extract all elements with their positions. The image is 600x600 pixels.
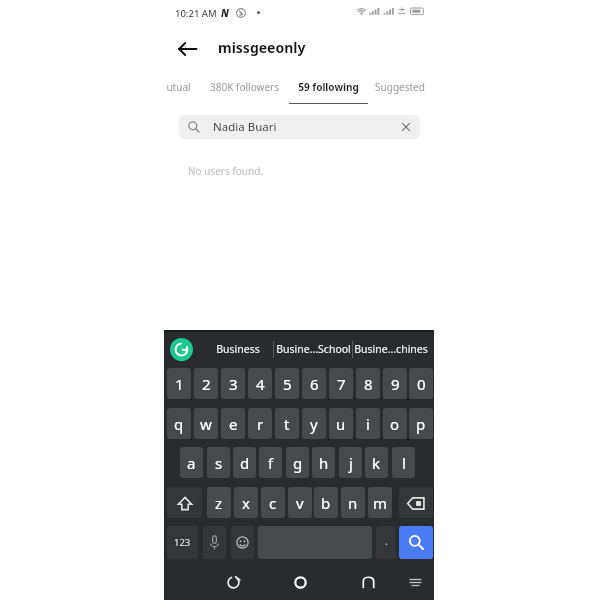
button[interactable]: v [288, 487, 312, 518]
staticText: 8 [364, 374, 373, 394]
staticText: h [319, 453, 329, 473]
button[interactable]: Backspace [399, 487, 433, 518]
button[interactable]: 59 following [289, 72, 368, 104]
button[interactable]: u [329, 408, 353, 439]
button[interactable]: 380K followers [203, 72, 286, 104]
button[interactable]: More options [398, 565, 432, 599]
button[interactable]: Search [399, 526, 433, 559]
button[interactable]: c [261, 487, 285, 518]
staticText: N [221, 6, 229, 20]
button[interactable]: Suggested [370, 72, 430, 104]
staticText: 9 [391, 374, 400, 394]
button[interactable]: 3 [221, 368, 245, 399]
staticText: m [373, 493, 388, 513]
button[interactable]: a [180, 447, 203, 478]
button[interactable]: 5 [275, 368, 299, 399]
staticText: f [268, 453, 274, 473]
button[interactable]: . [376, 526, 396, 559]
staticText: s [215, 453, 223, 473]
button[interactable]: 8 [356, 368, 380, 399]
button[interactable]: j [339, 447, 362, 478]
button[interactable]: Busine...School [275, 332, 351, 366]
button[interactable]: x [234, 487, 258, 518]
button[interactable]: Back [351, 565, 385, 599]
button[interactable]: 1 [167, 368, 191, 399]
button[interactable]: Home [283, 565, 317, 599]
button[interactable]: Recents [216, 565, 250, 599]
staticText: 380K followers [210, 80, 279, 94]
button[interactable]: w [194, 408, 218, 439]
button[interactable]: Shift [167, 487, 202, 518]
staticText: i [366, 414, 370, 434]
staticText: a [187, 453, 196, 473]
staticText: 4 [256, 374, 265, 394]
staticText: 1 [175, 374, 184, 394]
button[interactable]: q [167, 408, 191, 439]
button[interactable]: r [248, 408, 272, 439]
staticText: 0 [417, 374, 426, 394]
staticText: b [321, 493, 331, 513]
button[interactable]: t [275, 408, 299, 439]
button[interactable]: i [356, 408, 380, 439]
staticText: missgeeonly [218, 38, 306, 57]
staticText: p [416, 414, 426, 434]
staticText: 59 following [298, 80, 359, 94]
staticText: 2 [202, 374, 211, 394]
staticText: g [293, 453, 303, 473]
staticText: k [372, 453, 381, 473]
button[interactable]: 7 [329, 368, 353, 399]
staticText: z [215, 493, 223, 513]
button[interactable]: g [286, 447, 309, 478]
button[interactable]: Voice input [203, 526, 226, 559]
button[interactable]: n [341, 487, 365, 518]
staticText: u [336, 414, 346, 434]
staticText: y [310, 414, 318, 434]
button[interactable]: Keyboard settings [170, 338, 193, 361]
button[interactable]: utual [160, 72, 197, 104]
staticText: l [402, 453, 406, 473]
staticText: . [385, 533, 388, 548]
button[interactable]: Nadia Buari [179, 115, 420, 139]
button[interactable]: o [383, 408, 407, 439]
staticText: 5 [283, 374, 292, 394]
staticText: No users found. [188, 164, 264, 178]
staticText: utual [166, 80, 191, 94]
button[interactable]: h [312, 447, 335, 478]
button[interactable]: Clear search [396, 117, 416, 137]
button[interactable]: 123 [167, 526, 198, 559]
button[interactable]: s [207, 447, 230, 478]
button[interactable]: b [314, 487, 338, 518]
button[interactable]: 2 [194, 368, 218, 399]
button[interactable]: d [233, 447, 256, 478]
staticText: d [240, 453, 250, 473]
button[interactable]: 0 [409, 368, 433, 399]
button[interactable]: Back [170, 32, 204, 66]
button[interactable]: Busine...chines [353, 332, 429, 366]
button[interactable]: Business [203, 332, 273, 366]
button[interactable]: k [365, 447, 388, 478]
button[interactable]: y [302, 408, 326, 439]
button[interactable]: Emoji [231, 526, 254, 559]
button[interactable]: m [368, 487, 392, 518]
staticText: n [348, 493, 358, 513]
staticText: 6 [310, 374, 319, 394]
staticText: Suggested [375, 80, 425, 94]
staticText: t [284, 414, 290, 434]
button[interactable]: p [409, 408, 433, 439]
staticText: c [269, 493, 277, 513]
staticText: Nadia Buari [213, 119, 277, 135]
staticText: x [242, 493, 250, 513]
staticText: j [349, 453, 353, 473]
button[interactable]: 4 [248, 368, 272, 399]
staticText: 7 [337, 374, 346, 394]
button[interactable]: 9 [383, 368, 407, 399]
staticText: v [296, 493, 304, 513]
staticText: 10:21 AM [175, 7, 217, 20]
button[interactable]: l [392, 447, 415, 478]
button[interactable]: z [207, 487, 231, 518]
staticText: q [174, 414, 184, 434]
button[interactable]: f [259, 447, 282, 478]
button[interactable]: e [221, 408, 245, 439]
button[interactable]: 6 [302, 368, 326, 399]
